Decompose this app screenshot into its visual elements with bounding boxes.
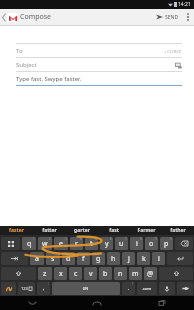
- button[interactable]: m: [129, 267, 142, 280]
- button[interactable]: Settings: [177, 282, 193, 295]
- button[interactable]: p: [160, 237, 173, 250]
- staticText: t: [90, 239, 93, 249]
- button[interactable]: Farmer: [130, 226, 162, 235]
- button[interactable]: More options: [182, 9, 194, 25]
- staticText: Type fast. Swype faster.: [16, 75, 82, 83]
- staticText: j: [128, 254, 130, 264]
- staticText: i: [136, 239, 138, 249]
- button[interactable]: faster: [0, 226, 33, 235]
- button[interactable]: w: [38, 237, 52, 250]
- staticText: g: [96, 254, 101, 264]
- staticText: p: [164, 239, 169, 249]
- staticText: 5: [95, 237, 97, 241]
- staticText: To: [16, 47, 23, 55]
- staticText: .com: [142, 286, 152, 291]
- button[interactable]: t: [85, 237, 98, 250]
- button[interactable]: Voice input: [159, 282, 175, 295]
- button[interactable]: Home: [64, 296, 129, 310]
- button[interactable]: r: [70, 237, 83, 250]
- button[interactable]: fatter: [33, 226, 66, 235]
- button[interactable]: s: [46, 252, 60, 265]
- staticText: z: [43, 269, 47, 279]
- staticText: 2: [49, 237, 51, 241]
- staticText: + CC/BCC: [164, 49, 182, 54]
- staticText: ': [95, 267, 96, 271]
- button[interactable]: d: [62, 252, 75, 265]
- staticText: d: [66, 254, 71, 264]
- button[interactable]: b: [99, 267, 112, 280]
- button[interactable]: Navigate up: [0, 9, 18, 25]
- button[interactable]: Recent apps: [129, 296, 194, 310]
- staticText: l: [158, 254, 160, 264]
- staticText: 123: [21, 286, 28, 291]
- button[interactable]: u: [115, 237, 128, 250]
- button[interactable]: a: [30, 252, 44, 265]
- staticText: 4: [80, 237, 82, 241]
- button[interactable]: l: [152, 252, 165, 265]
- staticText: v: [89, 269, 93, 279]
- button[interactable]: Swype menu: [1, 282, 16, 295]
- button[interactable]: z: [38, 267, 52, 280]
- button[interactable]: Type fast. Swype faster.: [16, 72, 182, 86]
- button[interactable]: ,: [37, 282, 50, 295]
- staticText: e: [59, 239, 63, 249]
- staticText: 9: [155, 237, 157, 241]
- button[interactable]: father: [162, 226, 194, 235]
- button[interactable]: y: [100, 237, 113, 250]
- button[interactable]: Attach file: [174, 61, 182, 69]
- staticText: 3: [65, 237, 67, 241]
- staticText: ': [140, 267, 141, 271]
- staticText: fast: [109, 227, 119, 234]
- button[interactable]: @: [144, 267, 157, 280]
- button[interactable]: Backspace: [175, 237, 193, 250]
- staticText: h: [111, 254, 116, 264]
- button[interactable]: To: [16, 44, 182, 58]
- button[interactable]: Numbers: [18, 282, 35, 295]
- button[interactable]: q: [22, 237, 36, 250]
- button[interactable]: Tab: [1, 252, 28, 265]
- button[interactable]: h: [107, 252, 120, 265]
- button[interactable]: f: [77, 252, 90, 265]
- button[interactable]: n: [114, 267, 127, 280]
- button[interactable]: Shift: [1, 267, 36, 280]
- staticText: SEND: [165, 14, 179, 21]
- staticText: 6: [110, 237, 112, 241]
- staticText: r: [75, 239, 78, 249]
- staticText: father: [170, 227, 186, 234]
- staticText: ': [110, 267, 111, 271]
- staticText: n: [118, 269, 123, 279]
- staticText: fatter: [42, 227, 57, 234]
- button[interactable]: v: [84, 267, 97, 280]
- button[interactable]: x: [54, 267, 67, 280]
- button[interactable]: o: [145, 237, 158, 250]
- button[interactable]: Shift: [159, 267, 193, 280]
- button[interactable]: fast: [98, 226, 130, 235]
- button[interactable]: Space: [52, 282, 120, 295]
- button[interactable]: Symbols: [1, 237, 20, 250]
- button[interactable]: Subject: [16, 58, 182, 72]
- staticText: u: [119, 239, 124, 249]
- staticText: Farmer: [137, 227, 156, 234]
- button[interactable]: j: [122, 252, 135, 265]
- staticText: .: [128, 285, 130, 292]
- staticText: c: [74, 269, 78, 279]
- staticText: k: [142, 254, 146, 264]
- staticText: s: [51, 254, 55, 264]
- staticText: @: [147, 269, 154, 279]
- button[interactable]: i: [130, 237, 143, 250]
- button[interactable]: Enter: [167, 252, 193, 265]
- button[interactable]: .: [122, 282, 135, 295]
- button[interactable]: k: [137, 252, 150, 265]
- button[interactable]: .com: [137, 282, 157, 295]
- button[interactable]: SEND: [153, 9, 182, 25]
- button[interactable]: c: [69, 267, 82, 280]
- staticText: EN: [83, 286, 89, 291]
- staticText: faster: [9, 227, 24, 234]
- staticText: b: [103, 269, 108, 279]
- button[interactable]: Back: [0, 296, 64, 310]
- staticText: f: [82, 254, 85, 264]
- button[interactable]: garter: [66, 226, 98, 235]
- staticText: w: [42, 239, 48, 249]
- button[interactable]: g: [92, 252, 105, 265]
- button[interactable]: e: [54, 237, 68, 250]
